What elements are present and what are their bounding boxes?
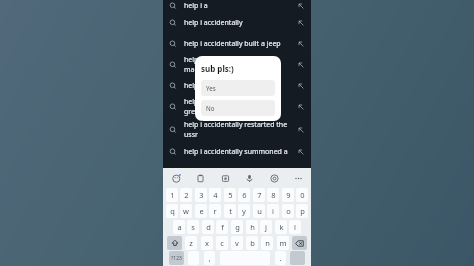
button[interactable]: More options (291, 171, 305, 185)
button[interactable]: help i accidentally built a jeep (163, 33, 311, 54)
button[interactable]: a (173, 220, 185, 234)
staticText: h (250, 222, 255, 232)
button[interactable]: g (231, 220, 243, 234)
button[interactable]: b (246, 236, 258, 250)
button[interactable]: Shift (167, 236, 182, 250)
staticText: b (250, 238, 255, 248)
staticText: d (206, 222, 211, 232)
button[interactable]: q (166, 204, 178, 218)
button[interactable]: help i a (163, 0, 311, 12)
button[interactable]: u (253, 204, 265, 218)
button[interactable]: help i accidentally summoned a (163, 142, 311, 162)
button[interactable]: t (224, 204, 236, 218)
staticText: sub pls:) (201, 63, 234, 74)
button[interactable]: y (238, 204, 250, 218)
button[interactable]: n (261, 236, 273, 250)
staticText: . (279, 253, 282, 263)
button[interactable]: 5 (224, 188, 236, 202)
staticText: Yes (206, 84, 216, 92)
staticText: f (221, 222, 224, 232)
staticText: w (183, 206, 189, 216)
button[interactable]: Voice input (242, 171, 256, 185)
button[interactable]: 8 (267, 188, 279, 202)
staticText: 8 (271, 190, 276, 200)
button[interactable]: ?123 (169, 251, 184, 265)
staticText: g (235, 222, 240, 232)
button[interactable]: k (275, 220, 287, 234)
button[interactable]: help i accidentally (163, 12, 311, 33)
button[interactable]: 3 (195, 188, 207, 202)
button[interactable]: 7 (253, 188, 265, 202)
staticText: t (229, 206, 232, 216)
button[interactable]: p (296, 204, 308, 218)
staticText: 2 (184, 190, 189, 200)
button[interactable]: l (289, 220, 301, 234)
staticText: y (242, 206, 246, 216)
staticText: 5 (228, 190, 233, 200)
staticText: help i accidentally built a jeep (184, 39, 281, 49)
button[interactable]: 1 (166, 188, 178, 202)
staticText: j (265, 222, 267, 232)
staticText: e (199, 206, 204, 216)
staticText: ussr (184, 130, 198, 140)
staticText: a (177, 222, 182, 232)
staticText: i (272, 206, 274, 216)
button[interactable]: 9 (282, 188, 294, 202)
button[interactable]: o (282, 204, 294, 218)
staticText: 4 (213, 190, 218, 200)
staticText: 0 (300, 190, 305, 200)
staticText: , (208, 253, 211, 263)
staticText: 1 (170, 190, 175, 200)
button[interactable]: c (216, 236, 228, 250)
staticText: o (286, 206, 291, 216)
staticText: x (205, 238, 209, 248)
staticText: c (220, 238, 224, 248)
button[interactable]: 4 (209, 188, 221, 202)
button[interactable]: i (267, 204, 279, 218)
button[interactable]: No (201, 100, 275, 116)
button[interactable]: f (216, 220, 228, 234)
button[interactable]: z (185, 236, 197, 250)
button[interactable]: Emoji (169, 171, 183, 185)
button[interactable]: e (195, 204, 207, 218)
button[interactable]: r (209, 204, 221, 218)
button[interactable]: 2 (180, 188, 192, 202)
staticText: help i accidentally restarted the (184, 120, 288, 130)
button[interactable]: 0 (296, 188, 308, 202)
button[interactable]: help i accidentally restarted the (163, 118, 311, 142)
button[interactable]: Enter (290, 251, 305, 265)
button[interactable]: , (204, 251, 215, 265)
staticText: n (265, 238, 270, 248)
button[interactable]: m (277, 236, 289, 250)
button[interactable]: h (246, 220, 258, 234)
staticText: help i accidentally (184, 55, 243, 65)
button[interactable]: 6 (238, 188, 250, 202)
button[interactable]: Settings (267, 171, 281, 185)
button[interactable]: s (187, 220, 199, 234)
staticText: 3 (199, 190, 204, 200)
button[interactable]: . (275, 251, 286, 265)
button[interactable]: help i accidentally (163, 96, 311, 118)
staticText: s (191, 222, 195, 232)
staticText: help i accidentally (184, 97, 243, 107)
staticText: help i a (184, 1, 208, 11)
button[interactable]: GIF (218, 171, 232, 185)
staticText: 6 (242, 190, 247, 200)
button[interactable]: v (231, 236, 243, 250)
button[interactable]: w (180, 204, 192, 218)
staticText: v (235, 238, 239, 248)
button[interactable]: help i accidentally ki (163, 76, 311, 96)
staticText: ?123 (171, 255, 182, 262)
button[interactable]: Clipboard (193, 171, 207, 185)
staticText: u (257, 206, 262, 216)
button[interactable]: Yes (201, 80, 275, 96)
button[interactable]: x (201, 236, 213, 250)
button[interactable]: Backspace (292, 236, 307, 250)
button[interactable]: j (260, 220, 272, 234)
button[interactable]: d (202, 220, 214, 234)
staticText: 7 (257, 190, 262, 200)
button[interactable]: help i accidentally (163, 54, 311, 76)
button[interactable]: sub pls:) (195, 56, 281, 121)
